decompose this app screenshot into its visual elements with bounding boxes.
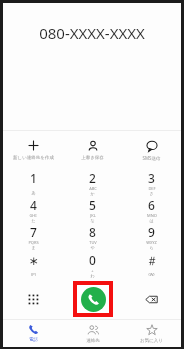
staticText: + <box>91 268 94 273</box>
staticText: わ <box>90 273 95 278</box>
button[interactable]: 1 <box>3 169 63 196</box>
staticText: さ <box>149 191 154 196</box>
staticText: ∗ <box>28 254 39 268</box>
button[interactable]: 3 <box>122 169 181 196</box>
staticText: ABC <box>89 186 97 191</box>
button[interactable]: SMS送信 <box>122 131 181 169</box>
button[interactable]: 上書き保存 <box>63 131 122 169</box>
staticText: JKL <box>90 213 96 218</box>
button[interactable]: 2 <box>63 169 122 196</box>
button[interactable]: Call <box>81 287 106 312</box>
staticText: 8 <box>89 224 96 240</box>
staticText: (W) <box>148 272 155 277</box>
button[interactable]: Keypad <box>3 279 63 319</box>
staticText: 2 <box>89 170 96 186</box>
button[interactable]: 7 <box>3 223 63 251</box>
staticText: 新しい連絡先を作成 <box>13 155 54 161</box>
staticText: PQRS <box>28 240 39 245</box>
staticText: 連絡先 <box>86 338 100 344</box>
button[interactable]: 連絡先 <box>63 320 122 347</box>
button[interactable]: お気に入り <box>122 320 181 347</box>
staticText: お気に入り <box>140 338 163 344</box>
staticText: 3 <box>148 170 155 186</box>
staticText: SMS送信 <box>142 155 161 161</box>
staticText: や <box>90 245 95 250</box>
staticText: GHI <box>29 213 37 218</box>
staticText: (P) <box>31 272 36 277</box>
button[interactable]: ＃ <box>122 251 181 279</box>
button[interactable]: 9 <box>122 223 181 251</box>
staticText: MNO <box>147 213 157 218</box>
staticText: あ <box>31 190 36 195</box>
staticText: 5 <box>89 197 96 213</box>
button[interactable]: 0 <box>63 251 122 279</box>
button[interactable]: 8 <box>63 223 122 251</box>
button[interactable]: 5 <box>63 196 122 223</box>
staticText: た <box>31 218 36 223</box>
staticText: 7 <box>30 224 37 240</box>
staticText: TUV <box>89 240 97 245</box>
staticText: 080-XXXX-XXXX <box>39 23 145 43</box>
staticText: 1 <box>30 170 37 186</box>
staticText: 電話 <box>29 337 38 343</box>
staticText: な <box>90 218 95 223</box>
staticText: ま <box>31 245 36 250</box>
staticText: 0 <box>89 252 96 268</box>
staticText: 4 <box>30 197 37 213</box>
staticText: 6 <box>148 197 155 213</box>
staticText: DEF <box>148 186 156 191</box>
button[interactable]: 6 <box>122 196 181 223</box>
staticText: WXYZ <box>146 240 157 245</box>
staticText: は <box>149 218 154 223</box>
staticText: 上書き保存 <box>81 155 104 161</box>
staticText: 9 <box>148 224 155 240</box>
button[interactable]: 4 <box>3 196 63 223</box>
button[interactable]: ∗ <box>3 251 63 279</box>
staticText: ら <box>149 245 154 250</box>
staticText: ＃ <box>146 253 158 268</box>
button[interactable]: Backspace <box>122 279 181 319</box>
button[interactable]: 電話 <box>3 320 63 347</box>
staticText: か <box>90 191 95 196</box>
button[interactable]: 新しい連絡先を作成 <box>3 131 63 169</box>
button[interactable]: 080-XXXX-XXXX <box>39 23 145 43</box>
